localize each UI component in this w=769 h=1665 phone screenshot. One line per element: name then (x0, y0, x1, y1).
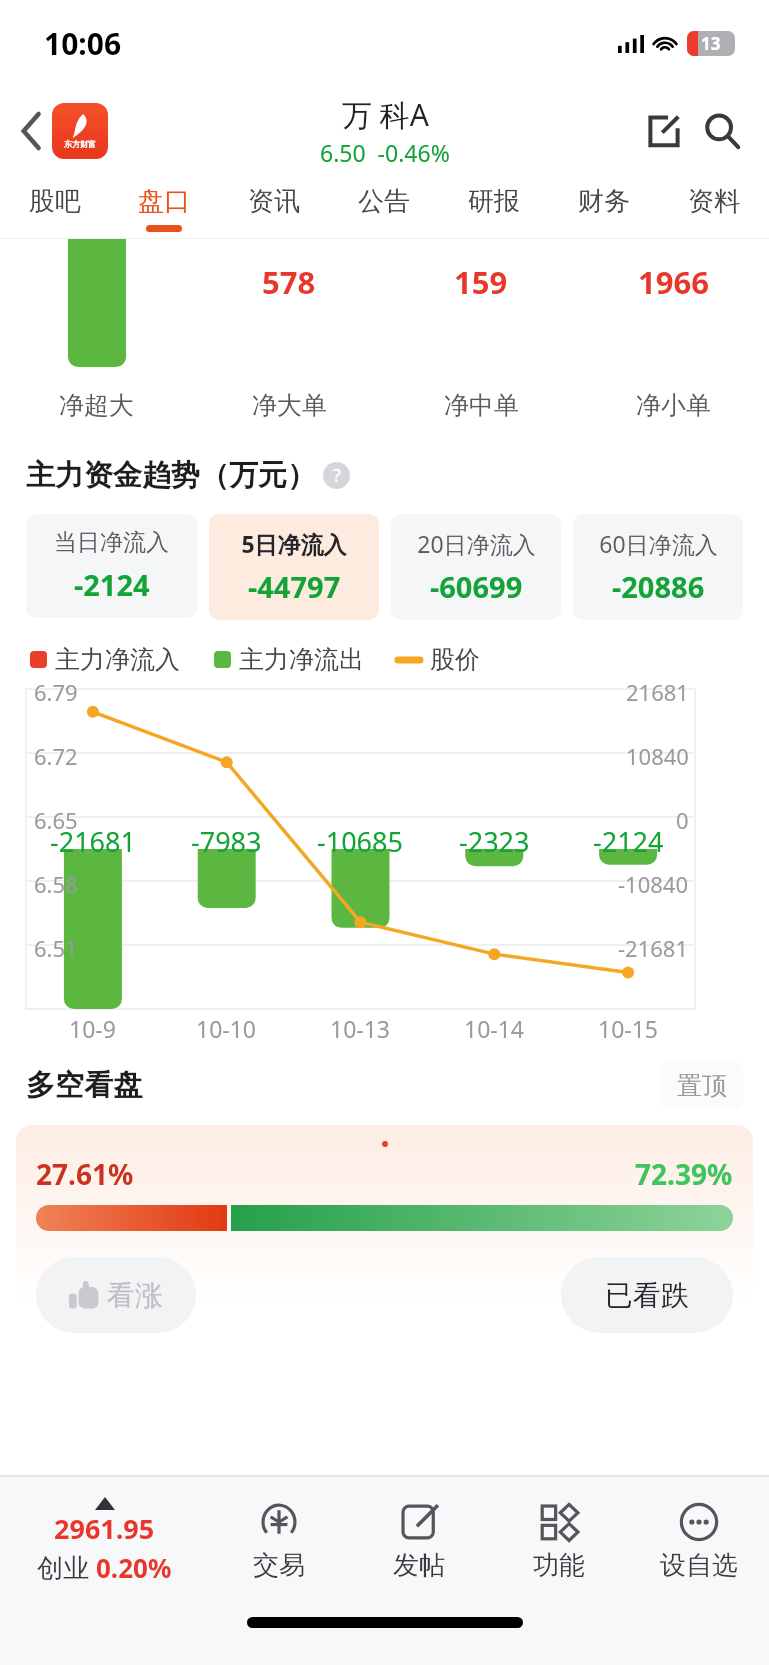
button[interactable]: 当日净流入 (26, 514, 197, 618)
staticText: -21681 (50, 823, 136, 860)
staticText: 主力净流出 (239, 644, 364, 675)
staticText: 578 (262, 261, 316, 303)
staticText: 10-14 (464, 1013, 525, 1044)
staticText: -20886 (612, 567, 705, 606)
button[interactable]: 设自选 (629, 1477, 769, 1605)
staticText: 财务 (578, 185, 630, 218)
staticText: 0 (676, 805, 689, 835)
staticText: 6.79 (34, 677, 78, 707)
staticText: 盘口 (138, 185, 190, 218)
staticText: 主力资金趋势（万元） (26, 457, 316, 494)
staticText: 10:06 (44, 23, 122, 64)
staticText: 资讯 (248, 185, 300, 218)
staticText: 股价 (430, 644, 480, 675)
staticText: 交易 (253, 1549, 305, 1582)
staticText: 10840 (626, 741, 689, 771)
staticText: 多空看盘 (26, 1067, 142, 1104)
staticText: 20日净流入 (417, 528, 536, 559)
staticText: 72.39% (635, 1155, 733, 1193)
button[interactable]: 功能 (489, 1477, 629, 1605)
staticText: -2124 (593, 823, 664, 860)
button[interactable]: 60日净流入 (573, 514, 743, 620)
staticText: -7983 (191, 823, 262, 860)
button[interactable]: 研报 (439, 176, 549, 239)
staticText: 6.58 (34, 869, 78, 899)
staticText: 资料 (688, 185, 740, 218)
staticText: 看涨 (107, 1278, 163, 1313)
button[interactable]: 2961.95 (0, 1477, 209, 1605)
button[interactable]: 发帖 (349, 1477, 489, 1605)
button[interactable]: 资料 (659, 176, 769, 239)
button[interactable]: Back (8, 107, 56, 155)
staticText: 6.51 (34, 933, 78, 963)
staticText: 净超大 (59, 390, 134, 421)
staticText: 研报 (468, 185, 520, 218)
staticText: 东方财富 (64, 139, 96, 149)
button[interactable]: 财务 (549, 176, 659, 239)
button[interactable]: 已看跌 (561, 1257, 733, 1333)
staticText: 13 (701, 32, 721, 55)
staticText: 公告 (358, 185, 410, 218)
staticText: 6.72 (34, 741, 78, 771)
staticText: 净小单 (636, 390, 711, 421)
button[interactable]: East Money (52, 103, 108, 159)
staticText: 万 科A (342, 94, 429, 135)
button[interactable]: 20日净流入 (391, 514, 561, 620)
button[interactable]: 公告 (329, 176, 439, 239)
staticText: 27.61% (36, 1155, 134, 1193)
staticText: 159 (454, 261, 508, 303)
staticText: 功能 (533, 1549, 585, 1582)
button[interactable]: 5日净流入 (209, 514, 379, 620)
button[interactable]: 资讯 (219, 176, 329, 239)
staticText: 60日净流入 (599, 528, 718, 559)
staticText: 21681 (626, 677, 689, 707)
staticText: ? (333, 463, 341, 488)
staticText: 10-9 (69, 1013, 116, 1044)
button[interactable]: Search (693, 102, 751, 160)
staticText: 置顶 (677, 1070, 727, 1101)
staticText: -2124 (74, 565, 150, 604)
staticText: 6.50 -0.46% (320, 137, 450, 168)
staticText: 1966 (638, 261, 709, 303)
staticText: 10-13 (330, 1013, 391, 1044)
staticText: -21681 (618, 933, 689, 963)
staticText: 净中单 (444, 390, 519, 421)
button[interactable]: Help (323, 462, 350, 489)
staticText: -60699 (430, 567, 523, 606)
button[interactable]: 盘口 (109, 176, 219, 239)
staticText: 设自选 (660, 1549, 738, 1582)
staticText: -10685 (317, 823, 403, 860)
button[interactable]: 看涨 (36, 1257, 196, 1333)
button[interactable]: Share (635, 102, 693, 160)
staticText: 5日净流入 (241, 528, 347, 559)
staticText: -44797 (248, 567, 341, 606)
staticText: 创业 (37, 1549, 96, 1585)
staticText: 6.65 (34, 805, 78, 835)
staticText: 10-10 (196, 1013, 257, 1044)
staticText: 股吧 (29, 185, 81, 218)
staticText: 2961.95 (54, 1510, 155, 1547)
staticText: 发帖 (393, 1549, 445, 1582)
button[interactable]: 交易 (209, 1477, 349, 1605)
staticText: -2323 (459, 823, 530, 860)
staticText: 净大单 (252, 390, 327, 421)
staticText: 当日净流入 (54, 528, 169, 557)
staticText: 10-15 (598, 1013, 659, 1044)
staticText: 已看跌 (605, 1278, 689, 1313)
staticText: 主力净流入 (55, 644, 180, 675)
staticText: -10840 (618, 869, 689, 899)
button[interactable]: 股吧 (0, 176, 109, 239)
staticText: 0.20% (96, 1550, 172, 1585)
button[interactable]: 置顶 (677, 1070, 727, 1101)
